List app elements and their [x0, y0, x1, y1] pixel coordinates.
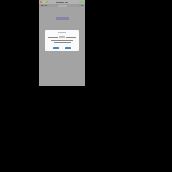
button[interactable]	[39, 17, 85, 20]
button[interactable]: Confirm	[65, 47, 71, 49]
button[interactable]: Cancel	[53, 47, 59, 49]
